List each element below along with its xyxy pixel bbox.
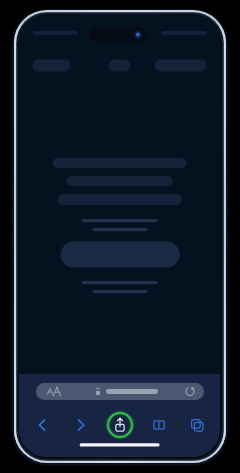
button[interactable]: Forward (68, 412, 94, 438)
button[interactable]: Bookmarks (146, 412, 172, 438)
button[interactable]: Back (29, 412, 55, 438)
button[interactable]: Share (105, 410, 135, 440)
button[interactable]: Address and search bar (36, 383, 204, 400)
button[interactable]: Tabs (184, 412, 210, 438)
